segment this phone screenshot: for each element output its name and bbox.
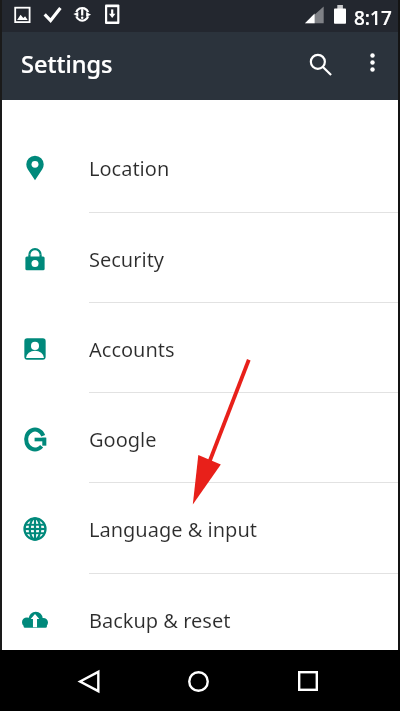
button[interactable]: Accounts bbox=[0, 304, 400, 394]
staticText: Google bbox=[89, 426, 157, 453]
button[interactable]: Recents bbox=[290, 663, 326, 699]
button[interactable]: Backup & reset bbox=[0, 575, 400, 665]
button[interactable]: Security bbox=[0, 214, 400, 304]
button[interactable]: Location bbox=[0, 123, 400, 213]
staticText: Security bbox=[89, 246, 165, 273]
staticText: Location bbox=[89, 155, 170, 182]
button[interactable]: Google bbox=[0, 394, 400, 484]
staticText: 8:17 bbox=[354, 5, 392, 31]
button[interactable]: Back bbox=[71, 663, 107, 699]
staticText: Settings bbox=[21, 48, 113, 80]
button[interactable]: Language & input bbox=[0, 484, 400, 574]
staticText: Accounts bbox=[89, 336, 175, 363]
button[interactable]: Search bbox=[298, 42, 342, 86]
button[interactable]: Home bbox=[180, 663, 216, 699]
staticText: Language & input bbox=[89, 516, 257, 543]
button[interactable]: More options bbox=[352, 42, 393, 83]
staticText: Backup & reset bbox=[89, 607, 231, 634]
